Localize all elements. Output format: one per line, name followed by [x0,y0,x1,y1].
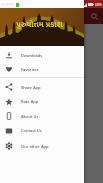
button[interactable]: About Us [0,109,84,123]
staticText: Our other App [21,144,49,149]
staticText: Share App [21,85,41,90]
button[interactable]: Contact Us [0,123,84,138]
staticText: 5:12 PM [1,2,14,7]
button[interactable]: Our other App [0,138,84,154]
button[interactable]: Share App [0,80,84,94]
staticText: Downloads [21,53,43,58]
staticText: પુરુષોત્તમ પ્રકાશ [16,18,63,31]
staticText: Contact Us [21,128,42,133]
button[interactable]: Downloads [0,48,84,62]
button[interactable]: Rate App [0,94,84,109]
staticText: Favorites [21,67,39,72]
button[interactable]: Search [91,13,98,20]
staticText: 68% [95,2,102,7]
staticText: About Us [21,114,39,119]
staticText: Rate App [21,99,39,104]
button[interactable]: Favorites [0,62,84,76]
